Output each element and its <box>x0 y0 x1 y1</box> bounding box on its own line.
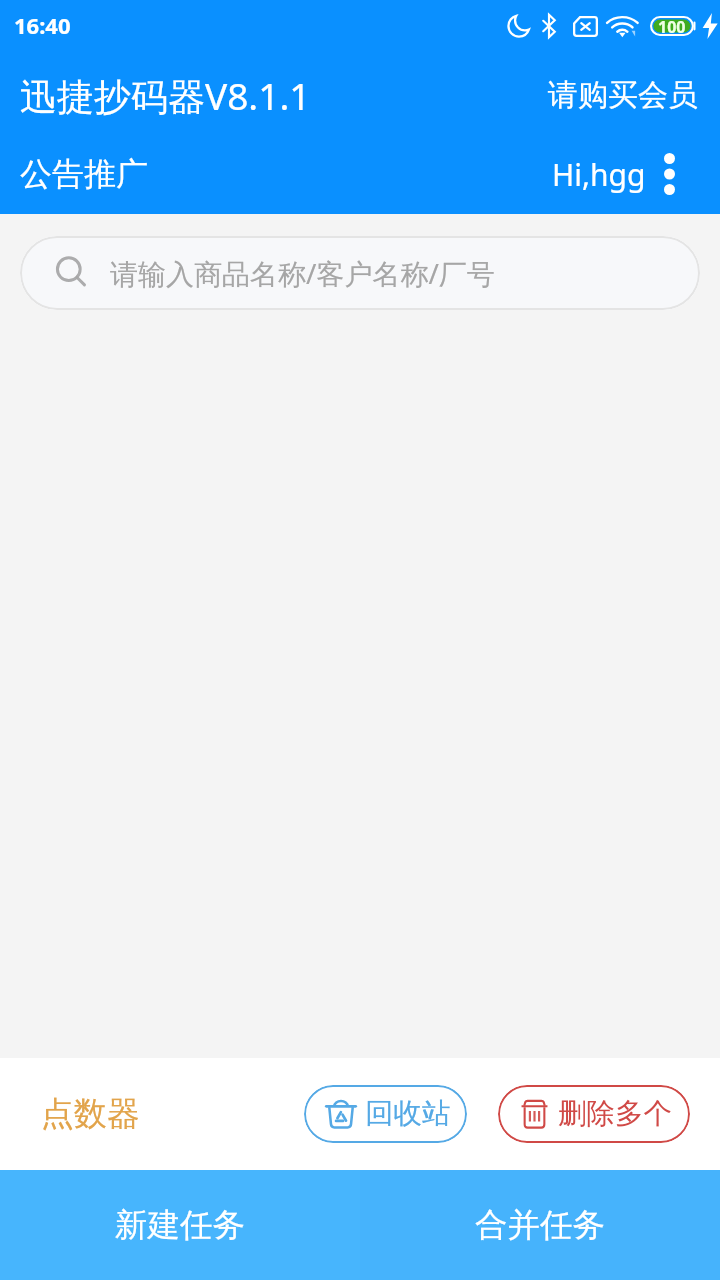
button[interactable]: 新建任务 <box>0 1170 360 1280</box>
staticText: 公告推广 <box>20 154 148 194</box>
button[interactable]: 请输入商品名称/客户名称/厂号 <box>20 236 700 310</box>
staticText: 回收站 <box>365 1096 451 1132</box>
staticText: 请购买会员 <box>548 76 698 114</box>
staticText: 16:40 <box>14 10 71 40</box>
staticText: 合并任务 <box>475 1205 605 1246</box>
button[interactable]: 合并任务 <box>360 1170 720 1280</box>
staticText: 删除多个 <box>558 1096 672 1132</box>
staticText: 新建任务 <box>115 1205 245 1246</box>
staticText: 迅捷抄码器V8.1.1 <box>20 70 311 121</box>
button[interactable]: 公告推广 <box>0 146 160 202</box>
button[interactable]: 回收站 <box>304 1085 467 1143</box>
button[interactable]: 删除多个 <box>498 1085 690 1143</box>
button[interactable]: More options <box>635 144 703 204</box>
button[interactable]: 点数器 <box>0 1081 160 1147</box>
button[interactable]: Hi,hgg <box>552 154 646 195</box>
button[interactable]: 请购买会员 <box>536 68 720 122</box>
staticText: 点数器 <box>41 1093 140 1135</box>
staticText: 请输入商品名称/客户名称/厂号 <box>110 254 495 292</box>
staticText: 100 <box>658 16 686 36</box>
